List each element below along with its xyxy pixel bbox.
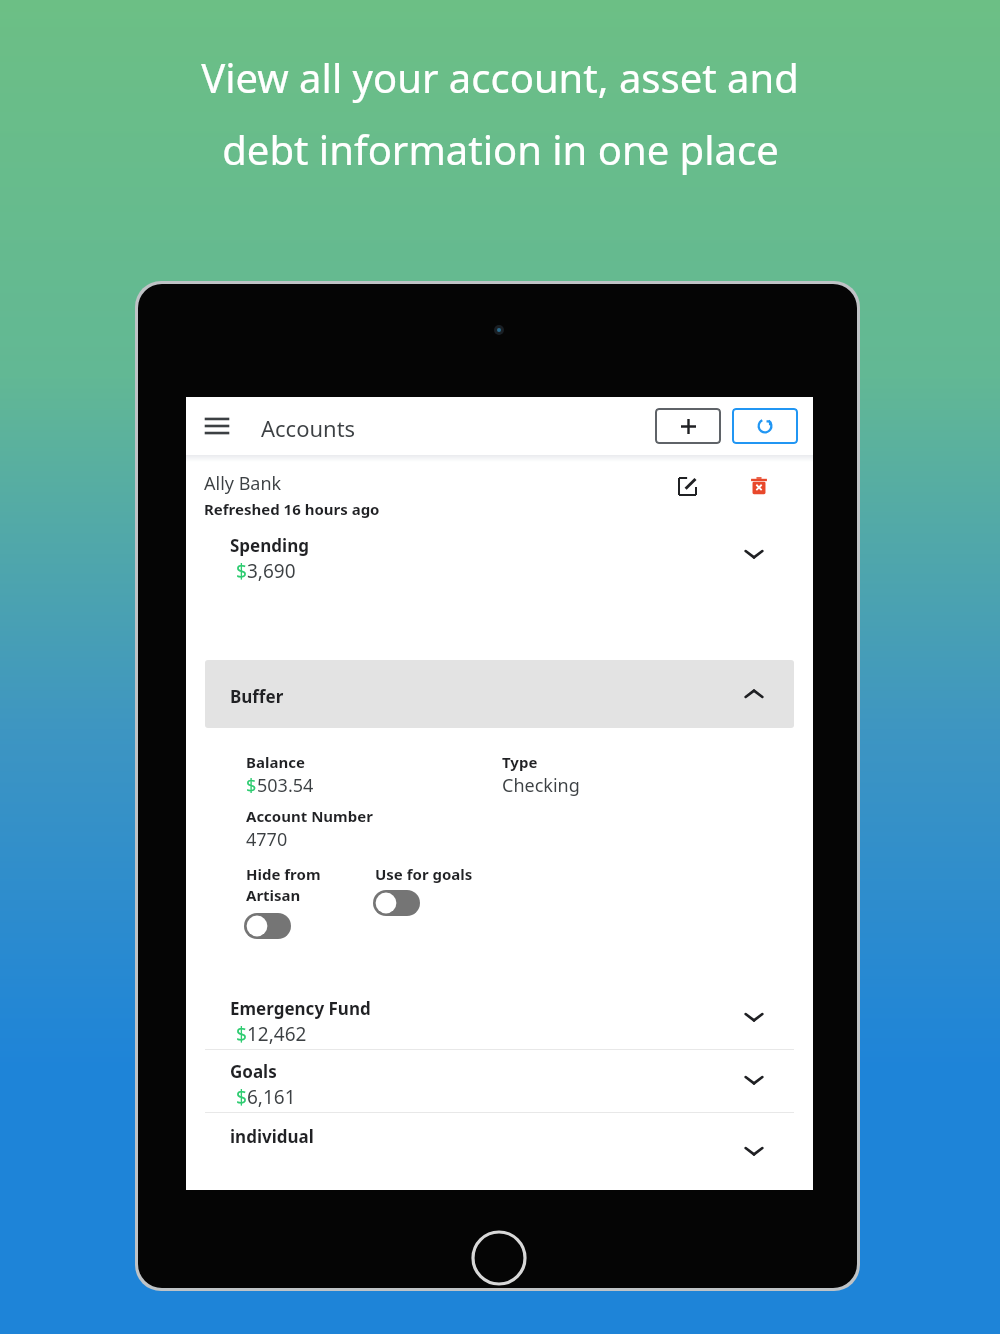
button[interactable]: Delete account (741, 468, 777, 504)
button[interactable]: Add account (655, 408, 721, 444)
staticText: Hide from (246, 864, 321, 884)
staticText: Emergency Fund (230, 997, 371, 1020)
staticText: Use for goals (375, 864, 473, 884)
staticText: Type (502, 752, 538, 772)
staticText: $ (236, 1021, 247, 1047)
staticText: Checking (502, 773, 580, 798)
staticText: 503.54 (257, 773, 314, 798)
staticText: View all your account, asset and (201, 50, 799, 104)
staticText: $ (246, 773, 257, 798)
staticText: Artisan (246, 885, 301, 905)
staticText: Spending (230, 534, 309, 557)
button[interactable]: Emergency Fund (186, 987, 813, 1049)
button[interactable]: Edit account (669, 468, 705, 504)
staticText: 4770 (246, 827, 288, 852)
button[interactable]: Goals (186, 1050, 813, 1112)
staticText: 3,690 (247, 558, 296, 584)
button[interactable]: Open navigation menu (200, 409, 234, 443)
staticText: individual (230, 1125, 314, 1148)
button[interactable]: Buffer (205, 660, 794, 728)
staticText: Buffer (230, 685, 284, 708)
button[interactable]: Refresh accounts (732, 408, 798, 444)
staticText: 6,161 (247, 1084, 296, 1110)
staticText: 12,462 (247, 1021, 307, 1047)
staticText: $ (236, 558, 247, 584)
staticText: Balance (246, 752, 305, 772)
button[interactable]: Hide from Artisan toggle (244, 909, 298, 943)
staticText: Account Number (246, 806, 373, 826)
button[interactable]: Spending (186, 524, 813, 646)
staticText: $ (236, 1084, 247, 1110)
staticText: Accounts (261, 413, 356, 443)
staticText: debt information in one place (222, 122, 779, 176)
staticText: Refreshed 16 hours ago (204, 499, 380, 519)
staticText: Goals (230, 1060, 277, 1083)
staticText: Ally Bank (204, 471, 282, 496)
button[interactable]: Use for goals toggle (373, 886, 427, 920)
